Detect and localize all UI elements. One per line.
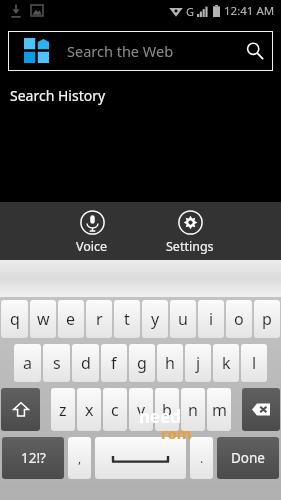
button[interactable]: 12!? xyxy=(2,437,64,479)
button[interactable]: l xyxy=(241,344,267,382)
staticText: k xyxy=(222,352,231,374)
staticText: Voice xyxy=(76,238,108,255)
button[interactable]: x xyxy=(77,388,101,431)
staticText: need xyxy=(139,405,182,428)
button[interactable]: t xyxy=(114,300,140,338)
staticText: w xyxy=(37,308,50,330)
staticText: a xyxy=(23,352,32,374)
button[interactable]: m xyxy=(207,388,231,431)
button[interactable]: Settings xyxy=(151,202,229,255)
staticText: d xyxy=(81,352,91,374)
button[interactable]: Done xyxy=(217,437,279,479)
button[interactable]: Shift xyxy=(1,388,40,431)
staticText: Search the Web xyxy=(67,41,174,61)
staticText: . xyxy=(200,450,204,466)
button[interactable]: o xyxy=(226,300,252,338)
staticText: t xyxy=(124,308,130,330)
button[interactable]: q xyxy=(1,300,28,338)
button[interactable]: Voice xyxy=(53,202,131,255)
button[interactable]: Search xyxy=(237,33,273,69)
staticText: m xyxy=(212,399,227,421)
button[interactable]: a xyxy=(14,344,41,382)
button[interactable]: k xyxy=(213,344,239,382)
staticText: p xyxy=(262,308,272,330)
staticText: q xyxy=(10,308,20,330)
staticText: r xyxy=(96,308,103,330)
button[interactable]: n xyxy=(181,388,205,431)
button[interactable]: p xyxy=(254,300,280,338)
staticText: G xyxy=(186,4,195,19)
staticText: Done xyxy=(231,449,265,467)
staticText: n xyxy=(188,399,198,421)
button[interactable]: u xyxy=(170,300,196,338)
button[interactable]: z xyxy=(51,388,75,431)
button[interactable]: r xyxy=(86,300,112,338)
staticText: , xyxy=(78,450,82,466)
button[interactable]: w xyxy=(30,300,56,338)
button[interactable]: g xyxy=(129,344,155,382)
button[interactable]: v xyxy=(129,388,153,431)
staticText: l xyxy=(252,352,257,374)
staticText: b xyxy=(162,399,172,421)
staticText: o xyxy=(234,308,244,330)
button[interactable]: Search the Web xyxy=(8,31,273,71)
button[interactable]: Backspace xyxy=(242,388,280,431)
staticText: i xyxy=(209,308,214,330)
staticText: h xyxy=(165,352,175,374)
button[interactable]: j xyxy=(185,344,211,382)
button[interactable]: f xyxy=(101,344,127,382)
staticText: z xyxy=(59,399,67,421)
staticText: s xyxy=(53,352,61,374)
button[interactable]: i xyxy=(198,300,224,338)
button[interactable]: Space xyxy=(95,437,186,479)
button[interactable]: s xyxy=(43,344,70,382)
button[interactable]: y xyxy=(142,300,168,338)
staticText: rom xyxy=(161,423,192,443)
staticText: c xyxy=(111,399,119,421)
button[interactable]: e xyxy=(58,300,84,338)
button[interactable]: c xyxy=(103,388,127,431)
staticText: x xyxy=(85,399,94,421)
staticText: Search History xyxy=(10,86,106,105)
button[interactable] xyxy=(0,260,281,297)
staticText: j xyxy=(196,352,201,374)
button[interactable]: b xyxy=(155,388,179,431)
staticText: 12:41 AM xyxy=(224,3,275,19)
staticText: y xyxy=(151,308,160,330)
button[interactable]: d xyxy=(72,344,99,382)
staticText: u xyxy=(178,308,188,330)
staticText: f xyxy=(111,352,117,374)
staticText: v xyxy=(137,399,146,421)
staticText: Settings xyxy=(166,238,214,255)
staticText: 12!? xyxy=(21,449,46,467)
button[interactable]: , xyxy=(68,437,91,479)
staticText: g xyxy=(137,352,147,374)
button[interactable]: h xyxy=(157,344,183,382)
button[interactable]: . xyxy=(190,437,213,479)
staticText: e xyxy=(66,308,76,330)
